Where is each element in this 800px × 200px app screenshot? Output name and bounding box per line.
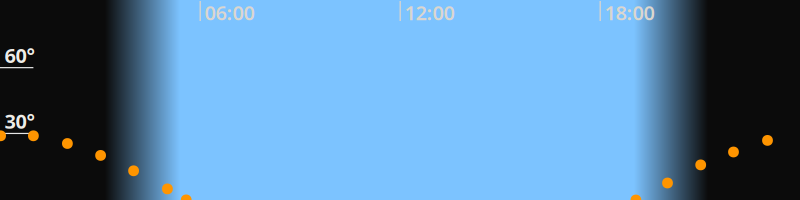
staticText: 06:00 xyxy=(204,0,254,26)
staticText: 18:00 xyxy=(604,0,654,26)
staticText: 60° xyxy=(5,42,35,68)
staticText: 30° xyxy=(5,108,35,134)
staticText: 12:00 xyxy=(404,0,454,26)
